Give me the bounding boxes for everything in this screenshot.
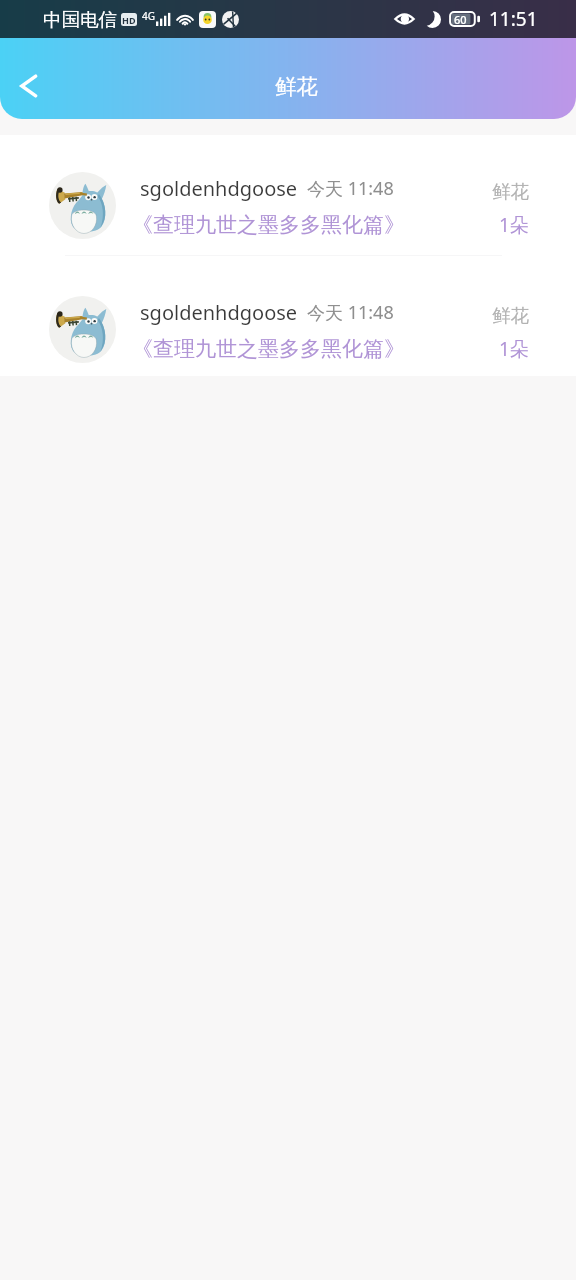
staticText: sgoldenhdgoose [140,175,298,202]
staticText: 鲜花 [492,180,529,203]
staticText: 鲜花 [492,304,529,327]
staticText: 1朵 [499,336,529,362]
staticText: 4G [142,9,155,23]
staticText: sgoldenhdgoose [140,299,298,326]
button[interactable]: sgoldenhdgoose [0,135,576,255]
staticText: HD [122,14,136,26]
staticText: 11:51 [489,6,538,32]
staticText: 今天 11:48 [307,176,394,201]
staticText: 《查理九世之墨多多黑化篇》 [132,336,405,362]
staticText: 中国电信 [43,8,117,31]
staticText: 1朵 [499,212,529,238]
button[interactable]: Back [7,64,51,108]
staticText: 《查理九世之墨多多黑化篇》 [132,212,405,238]
staticText: 鲜花 [275,73,318,100]
button[interactable]: sgoldenhdgoose [0,256,576,376]
staticText: 60 [454,12,467,27]
staticText: 今天 11:48 [307,300,394,325]
